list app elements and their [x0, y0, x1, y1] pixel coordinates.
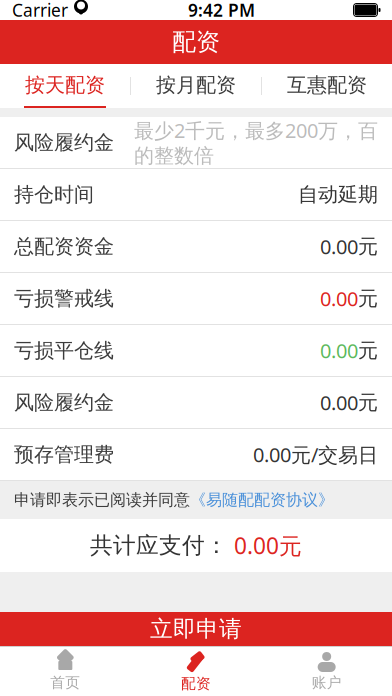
button[interactable]: 账户 [261, 647, 392, 696]
staticText: 共计应支付： [90, 532, 228, 559]
staticText: 预存管理费 [14, 442, 114, 467]
staticText: 自动延期 [298, 182, 378, 207]
button[interactable]: 立即申请 [0, 612, 392, 646]
staticText: 按天配资 [25, 73, 105, 97]
staticText: 元 [358, 338, 378, 363]
staticText: 风险履约金 [14, 390, 114, 415]
staticText: 9:42 PM [188, 0, 255, 21]
staticText: 按月配资 [156, 73, 236, 97]
staticText: 互惠配资 [287, 73, 367, 97]
staticText: 0.00 [320, 337, 358, 364]
staticText: 申请即表示已阅读并同意 [14, 490, 190, 510]
button[interactable]: 按月配资 [131, 64, 261, 108]
staticText: 元 [358, 390, 378, 415]
button[interactable]: 配资 [131, 647, 261, 696]
staticText: 配资 [181, 674, 211, 692]
button[interactable]: 按天配资 [0, 64, 130, 108]
staticText: Carrier [12, 0, 68, 21]
staticText: 亏损警戒线 [14, 286, 114, 311]
staticText: 0.00 [320, 389, 358, 416]
staticText: 配资 [172, 27, 220, 57]
staticText: 元/交易日 [291, 441, 378, 468]
staticText: 元 [358, 286, 378, 311]
staticText: 亏损平仓线 [14, 338, 114, 363]
button[interactable]: 首页 [0, 647, 131, 696]
staticText: 风险履约金 [14, 130, 114, 155]
staticText: 最少2千元，最多200万，百的整数倍 [134, 117, 378, 168]
staticText: 0.00 [320, 285, 358, 312]
staticText: 首页 [50, 673, 80, 691]
staticText: 《易随配配资协议》 [190, 490, 334, 510]
staticText: 立即申请 [150, 615, 242, 643]
button[interactable]: 互惠配资 [262, 64, 392, 108]
staticText: 账户 [312, 673, 342, 691]
staticText: 持仓时间 [14, 182, 94, 207]
button[interactable]: 申请即表示已阅读并同意 [0, 481, 392, 519]
staticText: 0.00元 [228, 530, 302, 560]
staticText: 总配资资金 [14, 234, 114, 259]
staticText: 元 [358, 234, 378, 259]
staticText: 0.00 [320, 233, 358, 260]
staticText: 0.00 [253, 441, 291, 468]
